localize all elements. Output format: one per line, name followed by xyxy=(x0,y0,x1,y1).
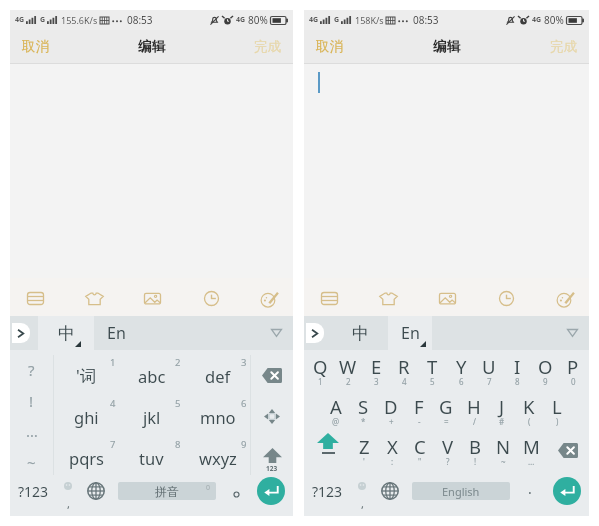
button[interactable]: More options xyxy=(555,316,589,350)
staticText: K xyxy=(523,394,535,419)
button[interactable]: N xyxy=(489,434,517,468)
button[interactable]: En xyxy=(94,316,138,350)
button[interactable]: Emoji xyxy=(56,475,80,507)
button[interactable]: Theme xyxy=(77,281,111,315)
button[interactable]: Shift xyxy=(251,437,293,478)
staticText: * xyxy=(361,416,366,427)
button[interactable]: List xyxy=(18,281,52,315)
staticText: ! xyxy=(474,456,477,467)
button[interactable]: Q xyxy=(306,354,334,388)
button[interactable]: J xyxy=(488,394,516,428)
button[interactable]: 完成 xyxy=(242,30,293,63)
button[interactable]: 中 xyxy=(332,316,388,350)
button[interactable]: E xyxy=(362,354,390,388)
button[interactable]: T xyxy=(418,354,446,388)
button[interactable]: Switch language xyxy=(84,475,107,507)
staticText: ?123 xyxy=(312,482,343,501)
button[interactable]: U xyxy=(475,354,503,388)
button[interactable]: 1 xyxy=(54,355,119,396)
staticText: ( xyxy=(528,416,531,427)
button[interactable]: 4 xyxy=(54,396,119,437)
button[interactable]: 3 xyxy=(185,355,250,396)
button[interactable]: 取消 xyxy=(10,30,61,63)
button[interactable]: M xyxy=(517,434,545,468)
button[interactable]: List xyxy=(312,281,346,315)
button[interactable]: ? xyxy=(10,355,53,385)
button[interactable]: ?123 xyxy=(308,475,346,507)
staticText: wxyz xyxy=(199,447,237,469)
button[interactable]: En xyxy=(388,316,432,350)
staticText: 4G xyxy=(236,15,246,25)
button[interactable]: 2 xyxy=(119,355,184,396)
button[interactable]: P xyxy=(559,354,587,388)
button[interactable]: More options xyxy=(259,316,293,350)
staticText: 08:53 xyxy=(127,13,153,27)
staticText: 4G xyxy=(532,15,542,25)
button[interactable]: L xyxy=(543,394,571,428)
button[interactable]: Z xyxy=(350,434,378,468)
button[interactable]: A xyxy=(322,394,350,428)
button[interactable]: Backspace xyxy=(548,433,588,467)
button[interactable]: V xyxy=(434,434,462,468)
button[interactable] xyxy=(224,475,248,507)
button[interactable]: C xyxy=(406,434,434,468)
button[interactable]: 中 xyxy=(38,316,94,350)
button[interactable]: 取消 xyxy=(304,30,355,63)
button[interactable]: Shift xyxy=(310,433,346,467)
button[interactable]: . xyxy=(518,475,542,507)
button[interactable]: D xyxy=(377,394,405,428)
button[interactable]: 完成 xyxy=(538,30,589,63)
button[interactable]: G xyxy=(432,394,460,428)
button[interactable]: 9 xyxy=(185,437,250,478)
button[interactable]: Palette xyxy=(252,281,286,315)
staticText: G xyxy=(334,15,340,25)
button[interactable]: X xyxy=(378,434,406,468)
button[interactable]: Switch language xyxy=(378,475,401,507)
staticText: ' xyxy=(363,456,365,467)
button[interactable]: ~ xyxy=(10,447,53,477)
staticText: N xyxy=(496,434,511,459)
button[interactable]: Y xyxy=(447,354,475,388)
button[interactable]: K xyxy=(515,394,543,428)
staticText: 0 xyxy=(206,483,211,493)
button[interactable]: Expand toolbar xyxy=(304,316,324,350)
button[interactable]: … xyxy=(10,416,53,446)
staticText: G xyxy=(439,394,453,419)
button[interactable]: Image xyxy=(430,281,464,315)
button[interactable]: Move cursor xyxy=(251,396,293,437)
button[interactable]: Emoji xyxy=(350,475,374,507)
button[interactable]: H xyxy=(460,394,488,428)
button[interactable]: ! xyxy=(10,386,53,416)
staticText: 1 xyxy=(110,356,116,369)
button[interactable]: 5 xyxy=(119,396,184,437)
staticText: ?123 xyxy=(18,482,49,501)
button[interactable]: Enter xyxy=(553,477,581,505)
button[interactable]: I xyxy=(503,354,531,388)
button[interactable]: S xyxy=(349,394,377,428)
button[interactable]: English xyxy=(412,482,510,500)
button[interactable]: Recent xyxy=(194,281,228,315)
button[interactable]: 6 xyxy=(185,396,250,437)
button[interactable]: R xyxy=(390,354,418,388)
button[interactable]: O xyxy=(531,354,559,388)
button[interactable]: 7 xyxy=(54,437,119,478)
button[interactable]: ?123 xyxy=(14,475,52,507)
button[interactable]: 拼音 xyxy=(118,482,216,500)
button[interactable]: W xyxy=(334,354,362,388)
button[interactable]: Backspace xyxy=(251,355,293,396)
staticText: 80% xyxy=(544,13,564,27)
staticText: '词 xyxy=(76,364,97,387)
button[interactable]: Image xyxy=(135,281,169,315)
staticText: . xyxy=(528,479,532,498)
button[interactable]: Recent xyxy=(489,281,523,315)
button[interactable]: Palette xyxy=(548,281,582,315)
staticText: 编辑 xyxy=(138,38,165,55)
button[interactable]: F xyxy=(405,394,433,428)
staticText: P xyxy=(567,354,579,379)
button[interactable]: 8 xyxy=(119,437,184,478)
button[interactable]: Enter xyxy=(257,477,285,505)
staticText: 完成 xyxy=(254,38,281,55)
button[interactable]: Expand toolbar xyxy=(10,316,30,350)
button[interactable]: B xyxy=(461,434,489,468)
button[interactable]: Theme xyxy=(371,281,405,315)
